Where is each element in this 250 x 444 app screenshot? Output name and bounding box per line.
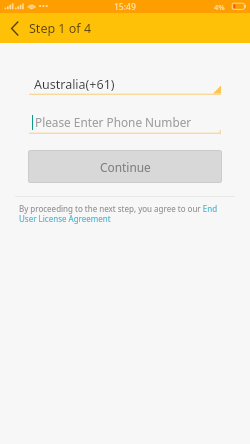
button[interactable]: Continue xyxy=(28,150,222,183)
staticText: By proceeding to the next step, you agre… xyxy=(19,203,220,224)
button[interactable]: By proceeding to the next step, you agre… xyxy=(19,203,220,224)
button[interactable]: Back xyxy=(0,13,29,43)
staticText: Continue xyxy=(100,159,151,175)
staticText: Please Enter Phone Number xyxy=(35,114,192,130)
staticText: 4% xyxy=(214,2,225,12)
staticText: Australia(+61) xyxy=(34,76,115,93)
staticText: 15:49 xyxy=(114,1,136,13)
button[interactable]: Please Enter Phone Number xyxy=(29,112,221,134)
button[interactable]: Australia(+61) xyxy=(29,72,221,95)
staticText: Step 1 of 4 xyxy=(29,20,92,37)
